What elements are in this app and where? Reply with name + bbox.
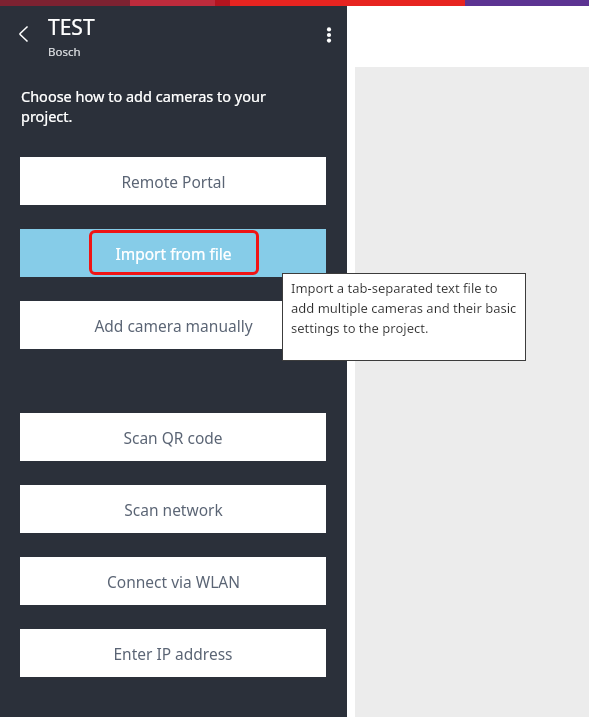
staticText: Scan network [124,499,223,520]
staticText: TEST [48,13,95,42]
button[interactable]: Import from file [20,229,326,277]
staticText: Bosch [48,44,81,60]
button[interactable]: Connect via WLAN [20,557,326,605]
staticText: Add camera manually [94,315,253,336]
staticText: Remote Portal [121,171,226,192]
button[interactable]: Add camera manually [20,301,326,349]
staticText: Import from file [115,243,232,264]
button[interactable]: Scan network [20,485,326,533]
staticText: Import a tab-separated text file to add … [291,279,520,337]
button[interactable]: Remote Portal [20,157,326,205]
staticText: Enter IP address [113,643,233,664]
staticText: Choose how to add cameras to your projec… [21,86,311,127]
button[interactable]: More options [312,18,346,52]
button[interactable]: Scan QR code [20,413,326,461]
button[interactable]: Back [6,16,42,52]
staticText: Scan QR code [123,427,223,448]
button[interactable]: Enter IP address [20,629,326,677]
staticText: Connect via WLAN [107,571,240,592]
